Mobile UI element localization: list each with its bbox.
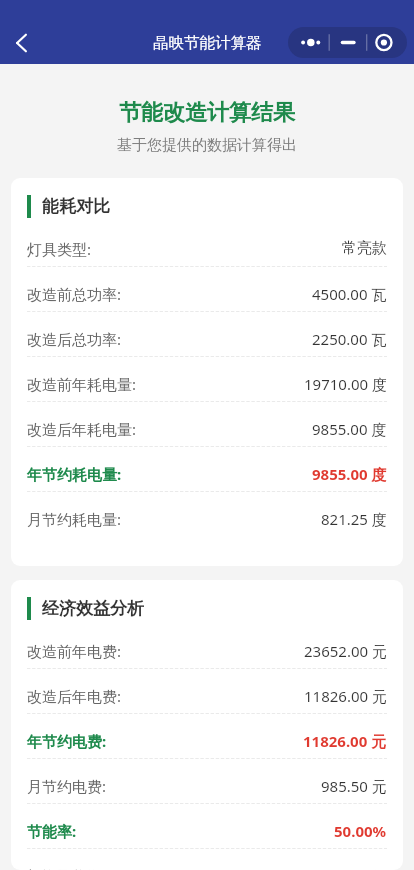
staticText: 985.50 元	[321, 776, 387, 796]
staticText: 能耗对比	[42, 196, 110, 217]
staticText: 晶映节能计算器	[153, 33, 262, 53]
staticText: 节能改造计算结果	[119, 99, 295, 127]
staticText: 投资回收期:	[27, 866, 107, 870]
staticText: 月节约耗电量:	[27, 509, 122, 529]
staticText: 年节约电费:	[27, 731, 107, 751]
staticText: 改造后年耗电量:	[27, 419, 137, 439]
staticText: 基于您提供的数据计算得出	[117, 136, 297, 155]
staticText: 改造后年电费:	[27, 686, 122, 706]
staticText: 改造前年电费:	[27, 641, 122, 661]
staticText: 灯具类型:	[27, 239, 92, 259]
staticText: 月节约电费:	[27, 776, 107, 796]
staticText: 4500.00 瓦	[312, 284, 387, 304]
staticText: 改造前总功率:	[27, 284, 122, 304]
staticText: 常亮款	[342, 239, 387, 258]
staticText: 11826.00 元	[303, 731, 387, 751]
button[interactable]: Back	[0, 22, 42, 64]
staticText: 9855.00 度	[312, 419, 387, 439]
staticText: 改造后总功率:	[27, 329, 122, 349]
staticText: 23652.00 元	[304, 641, 387, 661]
staticText: 年节约耗电量:	[27, 464, 122, 484]
staticText: 821.25 度	[321, 509, 387, 529]
staticText: 50.00%	[334, 821, 387, 841]
button[interactable]: Menu	[288, 27, 407, 58]
staticText: 19710.00 度	[304, 374, 387, 394]
staticText: 经济效益分析	[42, 598, 144, 619]
staticText: 11826.00 元	[304, 686, 387, 706]
staticText: 节能率:	[27, 821, 77, 841]
staticText: 9855.00 度	[312, 464, 387, 484]
staticText: 2250.00 瓦	[312, 329, 387, 349]
staticText: 改造前年耗电量:	[27, 374, 137, 394]
